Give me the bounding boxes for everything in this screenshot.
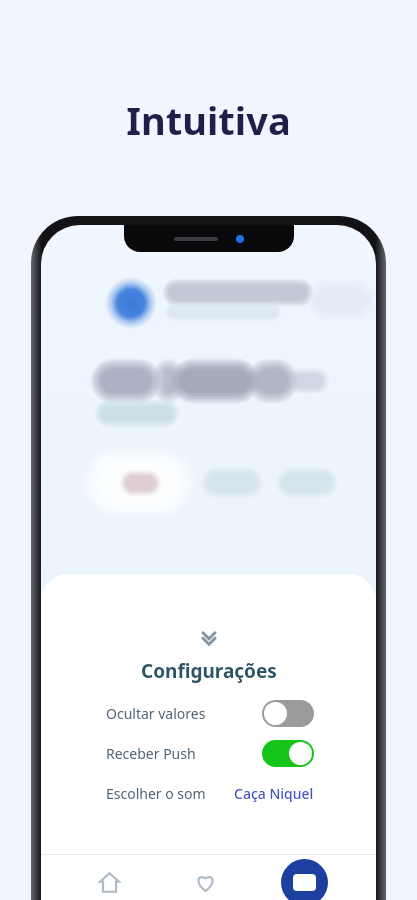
staticText: Escolher o som	[106, 784, 206, 803]
button[interactable]: Favoritos	[185, 862, 225, 900]
button[interactable]: Expandir	[41, 629, 376, 647]
button[interactable]: Desativado	[262, 700, 314, 727]
staticText: Caça Niquel	[234, 784, 314, 803]
button[interactable]: Escolher o som	[41, 780, 376, 806]
staticText: Receber Push	[106, 744, 196, 763]
staticText: Intuitiva	[126, 94, 291, 146]
button[interactable]: Ocultar valores	[41, 700, 376, 727]
staticText: Ocultar valores	[106, 704, 206, 723]
button[interactable]: Carteira	[281, 859, 328, 900]
button[interactable]: Receber Push	[41, 740, 376, 767]
button[interactable]: Início	[89, 862, 129, 900]
staticText: Configurações	[141, 658, 277, 684]
button[interactable]: Ativado	[262, 740, 314, 767]
